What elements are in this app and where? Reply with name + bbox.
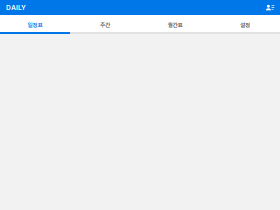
staticText: 일정표 xyxy=(27,23,42,28)
button[interactable]: 주간 xyxy=(70,15,140,32)
staticText: 주간 xyxy=(100,23,110,28)
staticText: 설정 xyxy=(240,23,250,28)
button[interactable]: 월간표 xyxy=(140,15,210,32)
button[interactable]: Contacts xyxy=(266,0,274,15)
staticText: DAILY xyxy=(6,3,26,12)
staticText: 월간표 xyxy=(167,23,182,28)
button[interactable]: 일정표 xyxy=(0,15,70,32)
button[interactable]: 설정 xyxy=(210,15,280,32)
